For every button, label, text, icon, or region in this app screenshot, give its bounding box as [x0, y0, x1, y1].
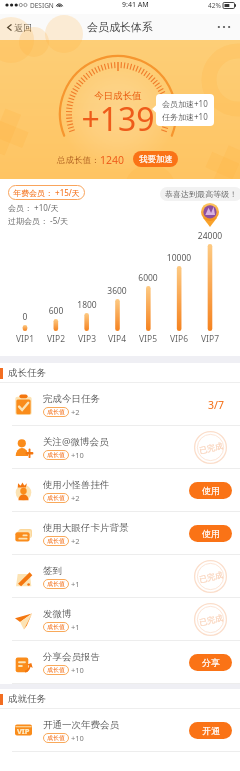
staticText: 成长值 — [47, 623, 65, 631]
staticText: 24000 — [193, 230, 227, 242]
staticText: +1 — [71, 622, 80, 632]
staticText: 使用 — [202, 528, 220, 539]
staticText: 已完成 — [198, 570, 224, 584]
button[interactable]: 关注@微博会员 — [0, 426, 240, 469]
staticText: 年费会员： +15/天 — [13, 187, 80, 198]
staticText: 分享会员报告 — [43, 651, 100, 663]
staticText: 成长值 — [47, 580, 65, 588]
staticText: VIP4 — [100, 333, 134, 345]
staticText: 成长值 — [47, 451, 65, 459]
staticText: +10 — [71, 665, 84, 675]
staticText: VIP — [17, 726, 30, 736]
button[interactable]: 分享 — [189, 654, 232, 671]
staticText: 已完成 — [198, 441, 224, 455]
staticText: 成长值 — [47, 408, 65, 416]
button[interactable]: 使用小怪兽挂件 — [0, 469, 240, 512]
staticText: +139 — [78, 97, 158, 141]
staticText: 成长值 — [47, 666, 65, 674]
staticText: 使用 — [202, 485, 220, 496]
staticText: 过期会员： -5/天 — [8, 215, 69, 226]
button[interactable]: 使用 — [189, 525, 232, 542]
staticText: 完成今日任务 — [43, 393, 100, 405]
button[interactable]: 我要加速 — [133, 151, 178, 167]
staticText: 成就任务 — [8, 693, 46, 705]
staticText: 任务加速+10 — [162, 111, 208, 122]
staticText: 1240 — [100, 153, 125, 167]
staticText: 今日成长值 — [88, 90, 148, 102]
button[interactable]: 分享会员报告 — [0, 641, 240, 684]
button[interactable]: 签到 — [0, 555, 240, 598]
staticText: 42% — [208, 1, 221, 10]
staticText: 成长任务 — [8, 367, 46, 379]
staticText: 返回 — [14, 22, 32, 33]
button[interactable]: 使用 — [189, 482, 232, 499]
button[interactable]: 使用大眼仔卡片背景 — [0, 512, 240, 555]
staticText: 3600 — [100, 285, 134, 297]
button[interactable]: 完成今日任务 — [0, 383, 240, 426]
staticText: 我要加速 — [139, 154, 173, 165]
staticText: 1800 — [70, 299, 104, 311]
staticText: +10 — [71, 450, 84, 460]
staticText: 已完成 — [198, 613, 224, 627]
button[interactable]: VIP — [0, 709, 240, 752]
staticText: 关注@微博会员 — [43, 435, 109, 448]
staticText: 0 — [8, 311, 42, 323]
staticText: VIP3 — [70, 333, 104, 345]
button[interactable]: More options — [214, 17, 234, 37]
staticText: VIP1 — [8, 333, 42, 345]
staticText: +1 — [71, 579, 80, 589]
button[interactable]: 恭喜达到最高等级！ — [165, 189, 237, 199]
staticText: 总成长值： — [57, 155, 100, 166]
button[interactable]: 发微博 — [0, 598, 240, 641]
staticText: 使用大眼仔卡片背景 — [43, 522, 129, 534]
staticText: 成长值 — [47, 734, 65, 742]
staticText: +2 — [71, 536, 80, 546]
staticText: 成长值 — [47, 494, 65, 502]
staticText: +10 — [71, 733, 84, 743]
staticText: VIP7 — [193, 333, 227, 345]
staticText: 会员加速+10 — [162, 98, 208, 109]
staticText: 使用小怪兽挂件 — [43, 479, 110, 491]
staticText: 分享 — [202, 657, 220, 668]
staticText: 开通 — [202, 725, 220, 736]
staticText: 发微博 — [43, 608, 72, 620]
button[interactable]: 返回 — [5, 22, 32, 33]
staticText: 会员： +10/天 — [8, 202, 59, 213]
staticText: 开通一次年费会员 — [43, 719, 119, 731]
staticText: 9:41 AM — [122, 0, 149, 10]
staticText: 签到 — [43, 565, 62, 577]
staticText: 10000 — [162, 252, 196, 264]
button[interactable]: 开通 — [189, 722, 232, 739]
staticText: VIP2 — [39, 333, 73, 345]
staticText: 600 — [39, 305, 73, 317]
staticText: VIP5 — [131, 333, 165, 345]
staticText: +2 — [71, 407, 80, 417]
staticText: 6000 — [131, 272, 165, 284]
staticText: VIP6 — [162, 333, 196, 345]
staticText: +2 — [71, 493, 80, 503]
staticText: 恭喜达到最高等级！ — [165, 189, 237, 199]
staticText: DESIGN — [30, 1, 54, 10]
staticText: 会员成长体系 — [87, 20, 153, 34]
staticText: 成长值 — [47, 537, 65, 545]
staticText: 3/7 — [208, 398, 224, 412]
